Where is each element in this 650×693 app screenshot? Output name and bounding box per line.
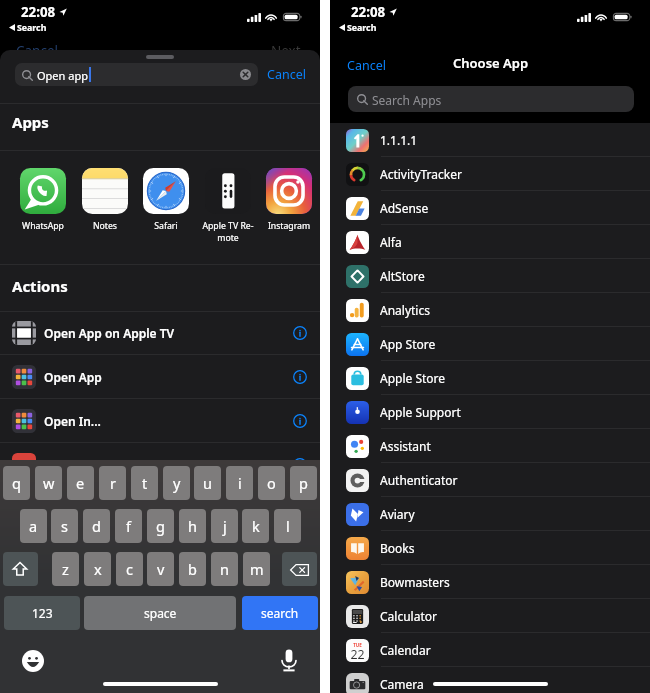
staticText: Assistant (380, 438, 431, 454)
staticText: w (43, 473, 55, 493)
button[interactable]: Dictation (279, 649, 299, 672)
button[interactable] (82, 168, 128, 214)
staticText: i (238, 473, 242, 493)
button[interactable]: g (147, 509, 174, 543)
staticText: s (61, 516, 68, 536)
button[interactable]: Backspace (282, 552, 317, 586)
staticText: l (286, 516, 290, 536)
staticText: k (252, 516, 260, 536)
button[interactable]: Books (330, 531, 650, 565)
staticText: d (92, 516, 101, 536)
staticText: Books (380, 540, 415, 556)
staticText: Aviary (380, 506, 415, 522)
staticText: m (250, 559, 264, 579)
button[interactable]: f (115, 509, 142, 543)
button[interactable]: Open App on Apple TV (0, 311, 320, 355)
button[interactable] (266, 168, 312, 214)
button[interactable]: Cancel (347, 56, 389, 74)
button[interactable]: 1.1.1.1 (330, 123, 650, 157)
staticText: 123 (32, 605, 53, 621)
button[interactable]: l (274, 509, 301, 543)
button[interactable]: Bowmasters (330, 565, 650, 599)
button[interactable]: Shift (3, 552, 38, 586)
button[interactable]: Assistant (330, 429, 650, 463)
button[interactable]: x (84, 552, 111, 586)
staticText: Open App (44, 369, 102, 385)
button[interactable]: i (226, 466, 253, 500)
button[interactable]: h (179, 509, 206, 543)
button[interactable]: ActivityTracker (330, 157, 650, 191)
button[interactable] (143, 168, 189, 214)
button[interactable]: 123 (4, 596, 80, 630)
button[interactable]: Apple Store (330, 361, 650, 395)
button[interactable]: b (179, 552, 206, 586)
button[interactable]: o (258, 466, 285, 500)
button[interactable]: Open app (15, 63, 258, 86)
staticText: o (267, 473, 276, 493)
button[interactable]: space (84, 596, 236, 630)
staticText: Open app (37, 68, 88, 83)
staticText: ActivityTracker (380, 166, 462, 182)
button[interactable]: Emoji keyboard (22, 650, 44, 672)
button[interactable]: n (211, 552, 238, 586)
staticText: x (94, 559, 102, 579)
button[interactable]: Apple Support (330, 395, 650, 429)
staticText: q (12, 473, 21, 493)
button[interactable]: Alfa (330, 225, 650, 259)
button[interactable]: AltStore (330, 259, 650, 293)
button[interactable]: App Store (330, 327, 650, 361)
button[interactable]: a (20, 509, 47, 543)
staticText: Open App on Apple TV (44, 325, 175, 341)
button[interactable]: e (67, 466, 94, 500)
button[interactable]: c (116, 552, 143, 586)
staticText: App Store (380, 336, 436, 352)
staticText: Calculator (380, 608, 437, 624)
staticText: t (142, 473, 148, 493)
staticText: Search (17, 22, 47, 34)
button[interactable]: r (99, 466, 126, 500)
button[interactable]: p (290, 466, 317, 500)
staticText: search (261, 605, 299, 621)
button[interactable]: d (83, 509, 110, 543)
staticText: Calendar (380, 642, 431, 658)
staticText: Notes (74, 220, 136, 232)
button[interactable]: AdSense (330, 191, 650, 225)
button[interactable]: Cancel (267, 63, 307, 86)
staticText: c (126, 559, 133, 579)
button[interactable]: Open In... (0, 399, 320, 443)
button[interactable]: search (242, 596, 318, 630)
button[interactable] (205, 168, 251, 214)
button[interactable]: m (243, 552, 270, 586)
button[interactable]: w (35, 466, 62, 500)
button[interactable]: v (147, 552, 174, 586)
staticText: g (156, 516, 165, 536)
staticText: v (157, 559, 165, 579)
button[interactable]: z (52, 552, 79, 586)
staticText: Cancel (267, 66, 306, 83)
button[interactable] (0, 443, 320, 487)
staticText: Cancel (16, 42, 59, 60)
button[interactable]: q (3, 466, 30, 500)
button[interactable]: Aviary (330, 497, 650, 531)
button[interactable]: s (51, 509, 78, 543)
button[interactable]: Calculator (330, 599, 650, 633)
staticText: Alfa (380, 234, 402, 250)
button[interactable]: u (194, 466, 221, 500)
button[interactable]: j (211, 509, 238, 543)
button[interactable]: Analytics (330, 293, 650, 327)
button[interactable]: Camera (330, 667, 650, 693)
button[interactable]: Search Apps (348, 86, 634, 112)
staticText: Search Apps (372, 92, 442, 108)
staticText: r (110, 473, 116, 493)
button[interactable]: Open App (0, 355, 320, 399)
staticText: AltStore (380, 268, 425, 284)
button[interactable]: y (163, 466, 190, 500)
staticText: Next (271, 42, 301, 60)
button[interactable]: Authenticator (330, 463, 650, 497)
staticText: b (188, 559, 197, 579)
button[interactable]: t (131, 466, 158, 500)
button[interactable]: k (242, 509, 269, 543)
button[interactable]: TUE (330, 633, 650, 667)
button[interactable] (20, 168, 66, 214)
staticText: AdSense (380, 200, 429, 216)
